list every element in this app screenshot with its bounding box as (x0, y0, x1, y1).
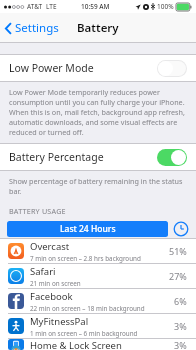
button[interactable]: Facebook (0, 289, 196, 313)
staticText: Safari (30, 265, 56, 278)
button[interactable]: Off (157, 60, 187, 77)
button[interactable]: Safari (0, 264, 196, 288)
staticText: Low Power Mode temporarily reduces power… (9, 87, 187, 137)
button[interactable]: On (157, 149, 187, 166)
staticText: Low Power Mode (9, 61, 94, 75)
button[interactable]: MyFitnessPal (0, 314, 196, 338)
staticText: 10:59 AM (81, 2, 110, 11)
staticText: MyFitnessPal (30, 315, 89, 328)
button[interactable]: Last 24 Hours (7, 221, 168, 237)
button[interactable]: Battery Percentage (9, 144, 187, 170)
button[interactable]: Home & Lock Screen (0, 339, 196, 350)
button[interactable]: Low Power Mode (9, 55, 187, 81)
staticText: 21 min on screen (30, 279, 81, 288)
staticText: Battery (77, 20, 119, 36)
staticText: Last 24 Hours (60, 223, 116, 235)
staticText: Overcast (30, 240, 70, 253)
staticText: BATTERY USAGE (9, 206, 66, 216)
staticText: 6% (174, 295, 187, 307)
button[interactable]: Overcast (0, 239, 196, 263)
staticText: LTE (46, 2, 57, 11)
staticText: 22 min on screen – 18 min background (30, 304, 145, 313)
staticText: 27% (169, 270, 187, 282)
staticText: Facebook (30, 290, 73, 303)
staticText: 1 min on screen – 6 min background (30, 329, 138, 338)
staticText: Home & Lock Screen (30, 339, 122, 350)
button[interactable]: Settings (5, 13, 196, 43)
staticText: 7 min on screen – 2.8 hrs background (30, 254, 141, 263)
staticText: 100% (157, 2, 174, 11)
button[interactable]: Show time details (173, 221, 189, 237)
staticText: 51% (169, 245, 187, 257)
staticText: Settings (15, 20, 59, 36)
staticText: Battery Percentage (9, 150, 104, 164)
staticText: 3% (174, 320, 187, 332)
staticText: AT&T (27, 2, 43, 11)
staticText: Show percentage of battery remaining in … (9, 176, 187, 196)
staticText: 3% (174, 339, 187, 350)
